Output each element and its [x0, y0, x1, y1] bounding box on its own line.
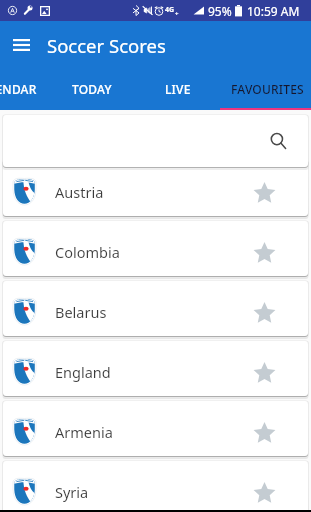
button[interactable]: Open navigation drawer — [0, 21, 42, 68]
button[interactable]: Add Austria to favourites — [247, 175, 281, 209]
button[interactable]: CALENDAR — [0, 68, 49, 110]
staticText: TODAY — [72, 81, 112, 97]
button[interactable]: LIVE — [134, 68, 222, 110]
staticText: Belarus — [55, 302, 107, 322]
other: Search — [271, 133, 289, 150]
button[interactable]: Colombia — [3, 221, 308, 276]
staticText: LIVE — [165, 81, 191, 97]
staticText: + — [175, 10, 179, 18]
button[interactable]: Austria — [3, 161, 308, 216]
button[interactable]: Add Colombia to favourites — [247, 235, 281, 269]
button[interactable]: Add England to favourites — [247, 355, 281, 389]
button[interactable]: England — [3, 341, 308, 396]
button[interactable]: Belarus — [3, 281, 308, 336]
staticText: 4G — [165, 5, 175, 15]
button[interactable]: TODAY — [48, 68, 136, 110]
staticText: 10:59 AM — [247, 3, 300, 19]
staticText: Soccer Scores — [47, 33, 166, 58]
button[interactable]: Syria — [3, 461, 308, 512]
button[interactable]: Add Armenia to favourites — [247, 415, 281, 449]
staticText: FAVOURITES — [231, 81, 304, 97]
button[interactable]: Armenia — [3, 401, 308, 456]
staticText: Armenia — [55, 422, 113, 442]
button[interactable]: Search — [3, 115, 308, 167]
staticText: Syria — [55, 482, 89, 502]
staticText: 95% — [208, 3, 232, 19]
button[interactable]: Add Belarus to favourites — [247, 295, 281, 329]
staticText: CALENDAR — [0, 81, 37, 97]
staticText: Austria — [55, 182, 104, 202]
staticText: Colombia — [55, 242, 120, 262]
button[interactable]: FAVOURITES — [222, 68, 311, 110]
button[interactable]: Add Syria to favourites — [247, 475, 281, 509]
staticText: England — [55, 362, 111, 382]
